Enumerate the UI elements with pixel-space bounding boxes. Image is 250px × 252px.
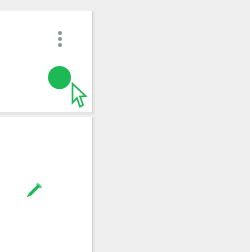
button[interactable]: More options — [51, 27, 69, 51]
button[interactable]: Edit — [23, 179, 45, 201]
button[interactable]: Add — [48, 66, 71, 89]
